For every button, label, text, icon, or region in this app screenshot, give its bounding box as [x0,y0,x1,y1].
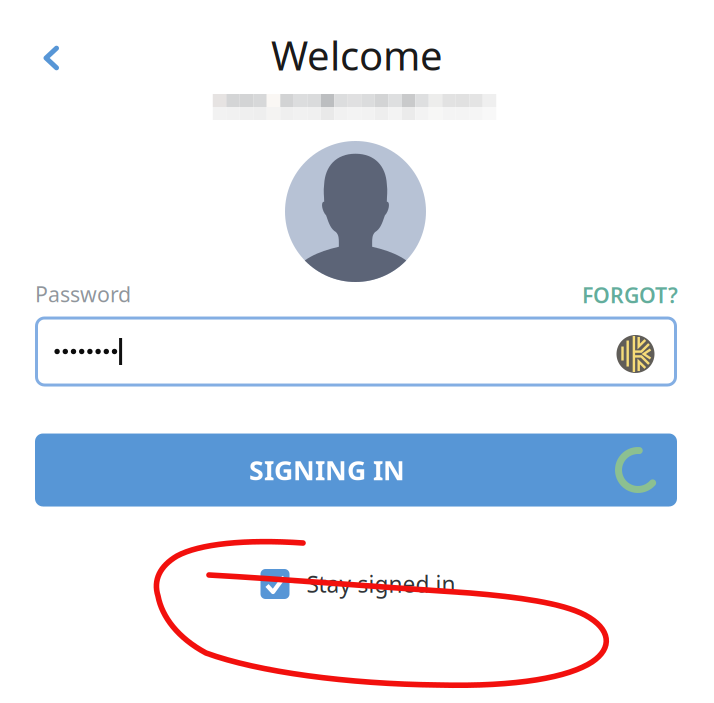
staticText: SIGNING IN [249,452,405,488]
button[interactable]: Stay signed in [260,569,455,599]
staticText: Stay signed in [306,569,455,599]
button[interactable]: SIGNING IN [35,433,677,506]
staticText: Password [35,280,131,308]
button[interactable]: FORGOT? [576,276,684,314]
staticText: Welcome [271,28,443,81]
button[interactable]: Back [23,30,79,86]
staticText: FORGOT? [582,281,678,309]
